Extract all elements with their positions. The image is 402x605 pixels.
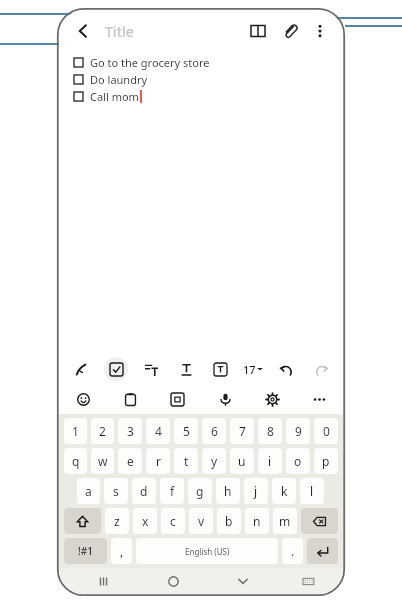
button[interactable]: Text box (208, 357, 232, 381)
button[interactable]: x (133, 508, 157, 534)
button[interactable]: j (244, 478, 268, 504)
button[interactable]: Back (69, 17, 97, 45)
staticText: b (225, 513, 233, 529)
button[interactable]: 6 (202, 418, 226, 444)
button[interactable]: Emoji (71, 387, 95, 411)
button[interactable]: h (216, 478, 240, 504)
staticText: Do laundry (90, 72, 148, 87)
button[interactable]: Stickers (165, 387, 189, 411)
button[interactable]: g (188, 478, 212, 504)
staticText: t (184, 453, 189, 469)
button[interactable]: Recents (92, 570, 114, 592)
staticText: 6 (211, 423, 218, 439)
button[interactable]: Keyboard settings (260, 387, 284, 411)
staticText: 3 (127, 423, 134, 439)
button[interactable]: Undo (274, 357, 298, 381)
button[interactable]: Home (162, 570, 184, 592)
staticText: e (127, 453, 134, 469)
button[interactable]: f (160, 478, 184, 504)
staticText: v (198, 513, 205, 529)
button[interactable]: v (189, 508, 213, 534)
button[interactable]: k (272, 478, 296, 504)
button[interactable]: 9 (286, 418, 310, 444)
staticText: i (268, 453, 272, 469)
button[interactable]: l (300, 478, 324, 504)
button[interactable]: z (105, 508, 129, 534)
staticText: Call mom (90, 89, 139, 104)
button[interactable]: Clipboard (118, 387, 142, 411)
staticText: . (291, 543, 295, 559)
button[interactable]: m (273, 508, 297, 534)
staticText: s (113, 483, 119, 499)
staticText: g (196, 483, 204, 499)
button[interactable]: Hide keyboard (232, 570, 254, 592)
button[interactable]: d (132, 478, 156, 504)
button[interactable]: English (US) (136, 538, 278, 564)
button[interactable]: b (217, 508, 241, 534)
button[interactable]: p (314, 448, 338, 474)
staticText: 7 (239, 423, 246, 439)
button[interactable]: 8 (258, 418, 282, 444)
staticText: p (322, 453, 330, 469)
staticText: , (120, 543, 124, 559)
button[interactable]: n (245, 508, 269, 534)
button[interactable]: t (174, 448, 198, 474)
button[interactable]: 0 (314, 418, 338, 444)
button[interactable]: c (161, 508, 185, 534)
button[interactable]: s (104, 478, 128, 504)
button[interactable]: i (258, 448, 282, 474)
button[interactable]: e (118, 448, 142, 474)
button[interactable]: q (64, 448, 87, 474)
button[interactable]: Paragraph style (139, 357, 163, 381)
button[interactable]: Switch keyboard (297, 570, 319, 592)
button[interactable]: !#1 (64, 538, 107, 564)
staticText: w (98, 453, 108, 469)
staticText: 1 (72, 423, 79, 439)
staticText: Go to the grocery store (90, 55, 210, 70)
button[interactable]: Attach (277, 18, 303, 44)
staticText: 5 (183, 423, 190, 439)
button[interactable]: 17 (243, 357, 263, 381)
button[interactable]: Backspace (301, 508, 338, 534)
button[interactable]: o (286, 448, 310, 474)
button[interactable]: Redo (309, 357, 333, 381)
staticText: k (281, 483, 288, 499)
staticText: j (254, 483, 258, 499)
button[interactable]: Voice input (213, 387, 237, 411)
staticText: m (279, 513, 291, 529)
button[interactable]: 2 (91, 418, 114, 444)
button[interactable]: More (307, 387, 331, 411)
button[interactable]: 4 (146, 418, 170, 444)
staticText: z (114, 513, 120, 529)
button[interactable]: Pen (69, 357, 93, 381)
button[interactable]: u (230, 448, 254, 474)
button[interactable]: Enter (307, 538, 338, 564)
staticText: 2 (99, 423, 106, 439)
button[interactable]: w (91, 448, 114, 474)
staticText: o (294, 453, 302, 469)
staticText: h (224, 483, 232, 499)
button[interactable]: Checklist (104, 357, 128, 381)
button[interactable]: Do laundry (74, 71, 343, 88)
button[interactable]: View mode (245, 18, 271, 44)
button[interactable]: 5 (174, 418, 198, 444)
button[interactable]: . (282, 538, 303, 564)
button[interactable]: r (146, 448, 170, 474)
button[interactable]: y (202, 448, 226, 474)
staticText: y (211, 453, 218, 469)
button[interactable]: Text format (174, 357, 198, 381)
button[interactable]: Go to the grocery store (74, 54, 343, 71)
button[interactable]: , (111, 538, 132, 564)
button[interactable]: 3 (118, 418, 142, 444)
button[interactable]: 7 (230, 418, 254, 444)
staticText: 8 (267, 423, 274, 439)
staticText: u (238, 453, 246, 469)
button[interactable]: Shift (64, 508, 101, 534)
staticText: l (310, 483, 314, 499)
staticText: x (142, 513, 149, 529)
button[interactable]: a (77, 478, 100, 504)
staticText: English (US) (185, 546, 230, 557)
button[interactable]: Call mom (74, 88, 343, 105)
button[interactable]: 1 (64, 418, 87, 444)
button[interactable]: More options (307, 18, 333, 44)
